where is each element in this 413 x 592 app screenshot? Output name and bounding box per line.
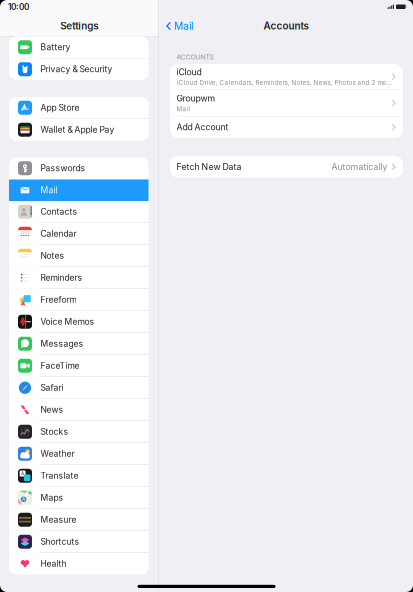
button[interactable]: Privacy & Security xyxy=(9,58,148,80)
staticText: Settings xyxy=(60,20,98,32)
staticText: Translate xyxy=(40,471,78,481)
button[interactable]: Weather xyxy=(9,443,148,464)
button[interactable]: Messages xyxy=(9,333,148,354)
staticText: Fetch New Data xyxy=(176,162,241,172)
staticText: Messages xyxy=(40,339,83,349)
staticText: Mail xyxy=(174,20,193,32)
staticText: Mail xyxy=(176,105,190,113)
staticText: Maps xyxy=(40,493,63,503)
staticText: A xyxy=(21,471,24,476)
button[interactable]: FaceTime xyxy=(9,355,148,376)
staticText: Freeform xyxy=(40,295,76,305)
button[interactable]: Health xyxy=(9,553,148,574)
staticText: Add Account xyxy=(176,122,228,132)
staticText: Stocks xyxy=(40,427,68,437)
button[interactable]: Passwords xyxy=(9,157,148,179)
staticText: Battery xyxy=(40,42,70,52)
button[interactable]: Calendar xyxy=(9,223,148,244)
button[interactable]: Safari xyxy=(9,377,148,398)
staticText: iCloud xyxy=(176,67,201,77)
staticText: Groupwm xyxy=(176,93,215,104)
button[interactable]: A xyxy=(9,465,148,486)
staticText: Notes xyxy=(40,251,64,261)
staticText: Weather xyxy=(40,449,74,459)
button[interactable]: Mail xyxy=(9,179,148,201)
button[interactable]: Mail xyxy=(159,16,198,36)
button[interactable]: Measure xyxy=(9,509,148,530)
button[interactable]: Wallet & Apple Pay xyxy=(9,119,148,140)
button[interactable]: Fetch New Data xyxy=(170,156,403,177)
button[interactable]: Shortcuts xyxy=(9,531,148,552)
staticText: Safari xyxy=(40,383,63,393)
staticText: FaceTime xyxy=(40,361,79,371)
staticText: Health xyxy=(40,559,66,569)
button[interactable]: Freeform xyxy=(9,289,148,310)
button[interactable]: Add Account xyxy=(170,116,403,138)
staticText: Passwords xyxy=(40,163,85,173)
staticText: Automatically xyxy=(331,162,387,172)
button[interactable]: App Store xyxy=(9,97,148,118)
staticText: App Store xyxy=(40,103,79,113)
button[interactable]: Voice Memos xyxy=(9,311,148,332)
button[interactable]: Notes xyxy=(9,245,148,266)
staticText: Privacy & Security xyxy=(40,64,112,74)
button[interactable]: Contacts xyxy=(9,201,148,222)
staticText: News xyxy=(40,405,63,415)
staticText: iCloud Drive, Calendars, Reminders, Note… xyxy=(176,79,391,86)
staticText: Calendar xyxy=(40,229,76,239)
staticText: Shortcuts xyxy=(40,537,79,547)
staticText: Accounts xyxy=(263,20,308,32)
button[interactable]: iCloud xyxy=(170,64,403,89)
staticText: 10:00 xyxy=(8,2,29,12)
staticText: Voice Memos xyxy=(40,317,94,327)
staticText: Mail xyxy=(40,185,57,195)
staticText: Contacts xyxy=(40,207,77,217)
button[interactable]: Reminders xyxy=(9,267,148,288)
button[interactable]: A xyxy=(9,487,148,508)
button[interactable]: Battery xyxy=(9,36,148,58)
staticText: Reminders xyxy=(40,273,82,283)
staticText: A xyxy=(22,496,25,502)
staticText: Wallet & Apple Pay xyxy=(40,125,114,135)
button[interactable]: Stocks xyxy=(9,421,148,442)
staticText: Measure xyxy=(40,515,76,525)
staticText: ACCOUNTS xyxy=(176,53,213,61)
button[interactable]: News xyxy=(9,399,148,420)
button[interactable]: Groupwm xyxy=(170,90,403,116)
